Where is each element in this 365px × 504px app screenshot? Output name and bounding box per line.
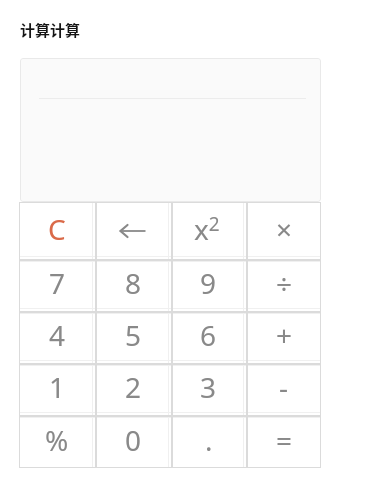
staticText: . [205, 421, 213, 459]
button[interactable]: ÷ [246, 259, 322, 311]
staticText: 0 [125, 421, 142, 459]
button[interactable]: 9 [171, 259, 246, 311]
staticText: 5 [125, 316, 142, 354]
staticText: 4 [49, 316, 66, 354]
button[interactable]: 3 [171, 363, 246, 415]
staticText: % [45, 421, 69, 459]
staticText: 8 [125, 264, 142, 302]
staticText: x2 [194, 210, 220, 248]
staticText: + [276, 316, 293, 354]
staticText: × [276, 210, 293, 248]
button[interactable]: 2 [95, 363, 171, 415]
button[interactable]: 5 [95, 311, 171, 363]
button[interactable]: . [171, 415, 246, 468]
staticText: 6 [200, 316, 217, 354]
button[interactable]: C [19, 202, 95, 259]
button[interactable]: + [246, 311, 322, 363]
button[interactable] [95, 202, 171, 259]
button[interactable]: 1 [19, 363, 95, 415]
staticText: = [276, 421, 293, 459]
staticText: 2 [125, 368, 142, 406]
button[interactable]: - [246, 363, 322, 415]
button[interactable]: × [246, 202, 322, 259]
staticText: 7 [49, 264, 66, 302]
staticText: ÷ [276, 264, 293, 302]
button[interactable]: = [246, 415, 322, 468]
button[interactable]: 8 [95, 259, 171, 311]
staticText: 9 [200, 264, 217, 302]
staticText: 1 [49, 368, 66, 406]
staticText: 计算计算 [20, 19, 81, 41]
staticText: 3 [200, 368, 217, 406]
staticText: C [48, 210, 66, 248]
button[interactable]: 4 [19, 311, 95, 363]
button[interactable]: x2 [171, 202, 246, 259]
button[interactable]: % [19, 415, 95, 468]
button[interactable]: 0 [95, 415, 171, 468]
staticText: - [279, 368, 289, 406]
button[interactable]: 7 [19, 259, 95, 311]
button[interactable]: 6 [171, 311, 246, 363]
